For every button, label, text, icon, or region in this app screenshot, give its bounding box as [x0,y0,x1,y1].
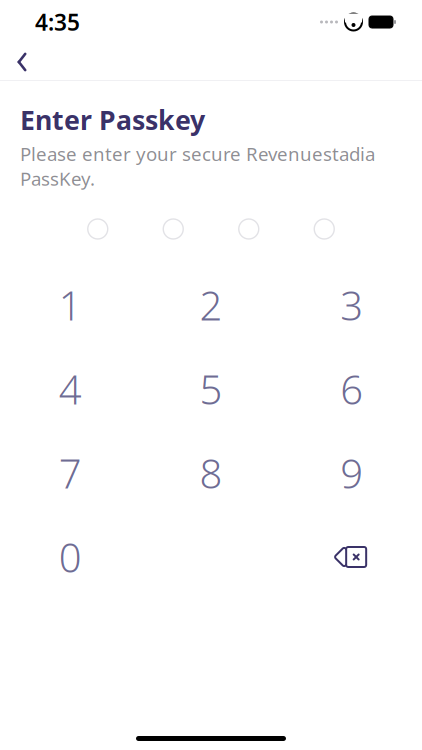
button[interactable]: 7 [0,431,141,515]
staticText: 3 [340,278,363,331]
button[interactable]: Delete [281,515,422,599]
button[interactable]: 4 [0,347,141,431]
button[interactable]: 0 [0,515,141,599]
staticText: 0 [59,530,82,583]
staticText: Please enter your secure Revenuestadia P… [20,141,375,191]
staticText: 4 [59,362,82,415]
staticText: 9 [340,446,363,499]
staticText: 8 [199,446,222,499]
button[interactable]: 3 [281,263,422,347]
staticText: 6 [340,362,363,415]
button[interactable]: 9 [281,431,422,515]
staticText: 4:35 [35,7,80,37]
staticText: 1 [59,278,82,331]
staticText: 5 [199,362,222,415]
button[interactable]: Back [0,44,44,80]
button[interactable]: 6 [281,347,422,431]
button[interactable]: 5 [141,347,281,431]
button[interactable]: 2 [141,263,281,347]
button[interactable]: 1 [0,263,141,347]
staticText: 7 [59,446,82,499]
staticText: 2 [199,278,222,331]
button[interactable]: 8 [141,431,281,515]
staticText: Enter Passkey [20,102,205,137]
